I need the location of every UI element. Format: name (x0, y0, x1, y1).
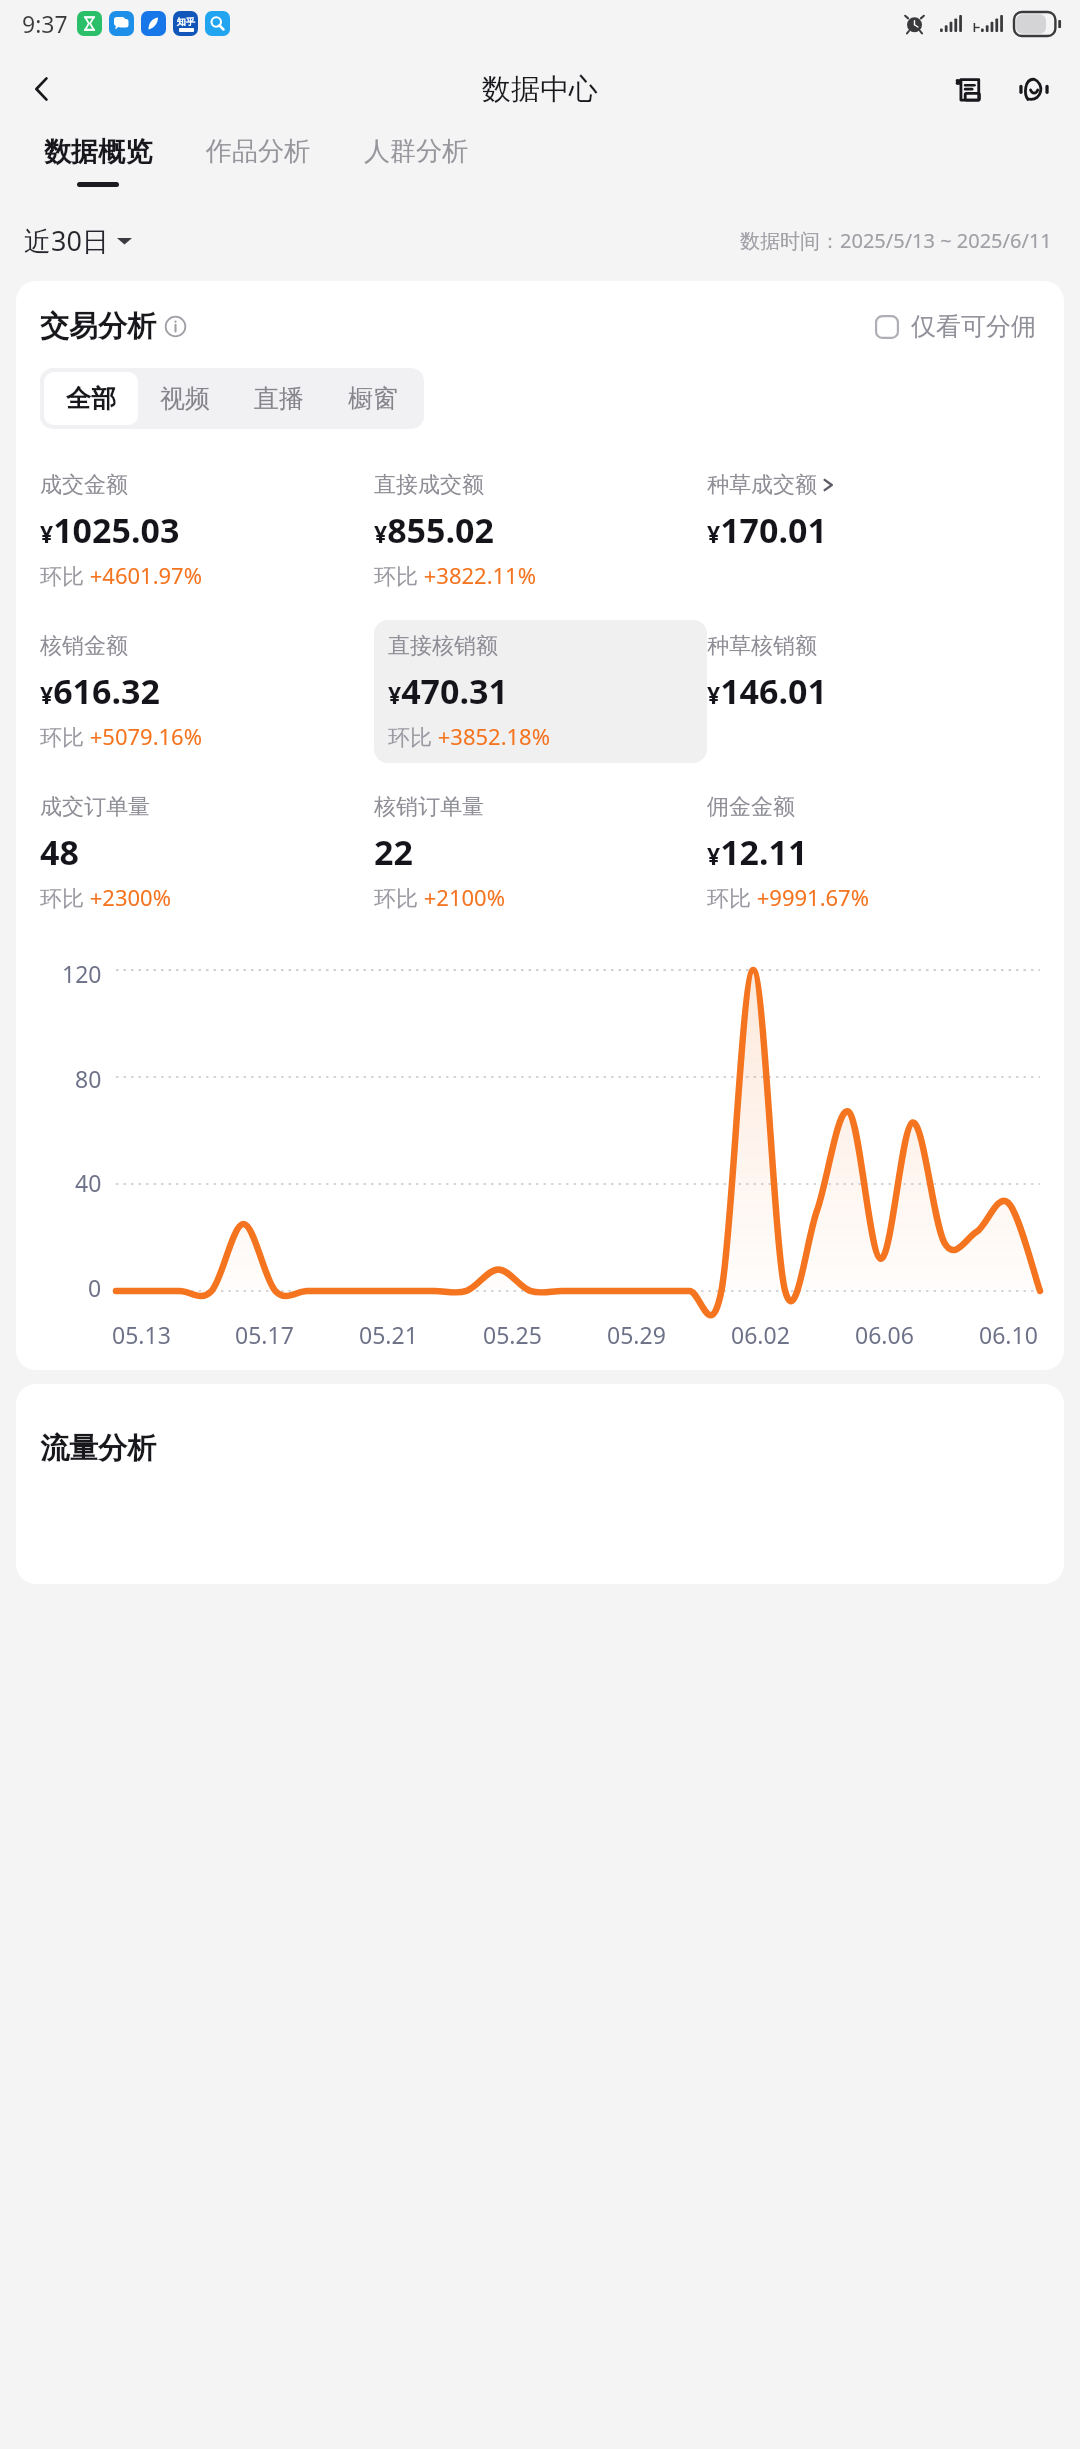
staticText: 05.17 (235, 1319, 294, 1350)
button[interactable]: 视频 (138, 372, 232, 425)
staticText: 环比 +3852.18% (388, 721, 550, 751)
staticText: 核销金额 (40, 632, 128, 660)
button[interactable]: 种草核销额 (707, 620, 1040, 760)
button[interactable]: 成交订单量 (40, 781, 374, 924)
staticText: 数据概览 (44, 135, 152, 169)
staticText: 80 (75, 1063, 102, 1094)
staticText: 知乎 (177, 16, 195, 27)
staticText: ¥146.01 (707, 668, 827, 714)
staticText: 120 (62, 958, 102, 989)
staticText: 06.02 (731, 1319, 790, 1350)
button[interactable]: 直播 (232, 372, 326, 425)
staticText: 种草成交额 (707, 471, 817, 499)
button[interactable]: 人群分析 (350, 131, 482, 185)
button[interactable]: 核销金额 (40, 620, 374, 763)
staticText: 06.10 (979, 1319, 1038, 1350)
staticText: 作品分析 (206, 135, 310, 168)
staticText: 直接核销额 (388, 632, 498, 660)
staticText: 佣金金额 (707, 793, 795, 821)
staticText: ¥616.32 (40, 668, 160, 714)
button[interactable]: 直接成交额 (374, 459, 707, 602)
staticText: 06.06 (855, 1319, 914, 1350)
button[interactable]: 成交金额 (40, 459, 374, 602)
button[interactable]: 佣金金额 (707, 781, 1040, 924)
staticText: 数据时间：2025/5/13 ~ 2025/6/11 (740, 227, 1052, 254)
staticText: 05.25 (483, 1319, 542, 1350)
staticText: 成交金额 (40, 471, 128, 499)
staticText: 全部 (66, 383, 116, 414)
button[interactable]: Customer service (1006, 62, 1060, 116)
staticText: 48 (40, 829, 79, 875)
button[interactable]: 全部 (44, 372, 138, 425)
button[interactable]: Report (942, 62, 996, 116)
staticText: ¥470.31 (388, 668, 508, 714)
staticText: 交易分析 (40, 308, 156, 345)
staticText: 环比 +9991.67% (707, 882, 869, 912)
staticText: ¥855.02 (374, 507, 494, 553)
staticText: 0 (88, 1272, 102, 1303)
staticText: 环比 +5079.16% (40, 721, 202, 751)
button[interactable]: 仅看可分佣 (870, 307, 1040, 346)
staticText: 环比 +2300% (40, 882, 171, 912)
button[interactable]: 近30日 (24, 222, 138, 259)
staticText: 视频 (160, 383, 210, 414)
button[interactable]: 种草成交额 (707, 459, 1040, 599)
button[interactable]: 作品分析 (192, 131, 324, 185)
staticText: 仅看可分佣 (911, 311, 1036, 342)
staticText: 22 (374, 829, 413, 875)
staticText: 直播 (254, 383, 304, 414)
staticText: 近30日 (24, 222, 109, 259)
staticText: 05.21 (359, 1319, 418, 1350)
button[interactable]: 直接核销额 (374, 620, 707, 763)
staticText: ¥12.11 (707, 829, 808, 875)
staticText: 环比 +2100% (374, 882, 505, 912)
staticText: 种草核销额 (707, 632, 817, 660)
staticText: 环比 +3822.11% (374, 560, 536, 590)
staticText: 05.13 (112, 1319, 171, 1350)
staticText: 数据中心 (482, 71, 598, 108)
staticText: 成交订单量 (40, 793, 150, 821)
staticText: ¥1025.03 (40, 507, 180, 553)
staticText: 橱窗 (348, 383, 398, 414)
staticText: 40 (75, 1167, 102, 1198)
staticText: 核销订单量 (374, 793, 484, 821)
button[interactable]: 橱窗 (326, 372, 420, 425)
button[interactable]: 数据概览 (30, 131, 166, 191)
staticText: 9:37 (22, 8, 68, 39)
button[interactable]: Back (14, 61, 70, 117)
staticText: 05.29 (607, 1319, 666, 1350)
staticText: 流量分析 (40, 1430, 156, 1467)
button[interactable]: 核销订单量 (374, 781, 707, 924)
staticText: 人群分析 (364, 135, 468, 168)
staticText: 直接成交额 (374, 471, 484, 499)
staticText: 环比 +4601.97% (40, 560, 202, 590)
staticText: ¥170.01 (707, 507, 827, 553)
